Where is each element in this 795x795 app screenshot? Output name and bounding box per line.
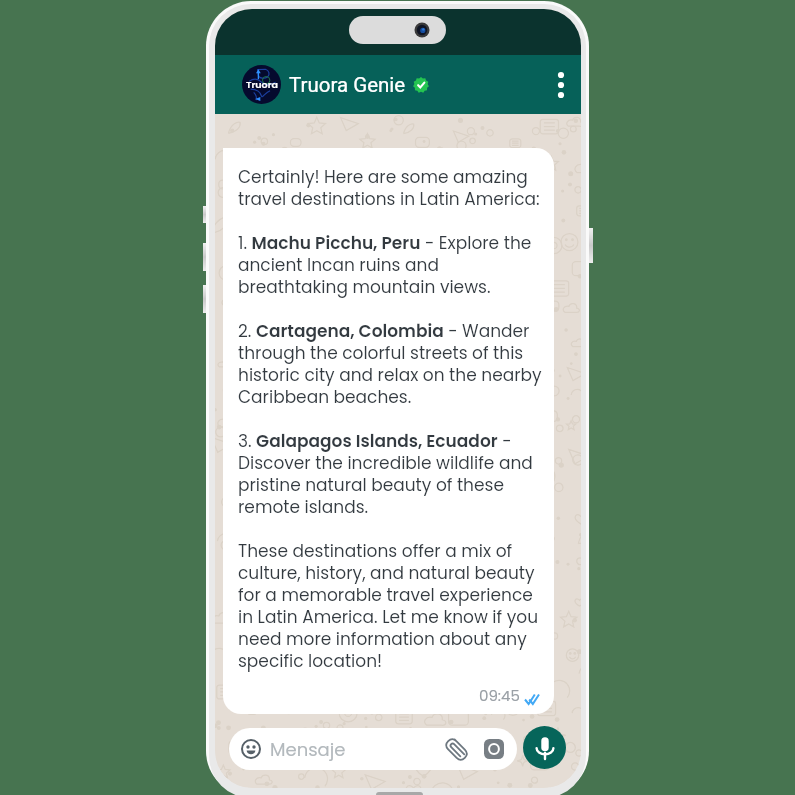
staticText: Mensaje [270,737,346,762]
button[interactable]: Contact photo [242,65,281,104]
button[interactable]: Certainly! Here are some amazing travel … [223,148,554,714]
button[interactable]: Camera [484,739,504,759]
staticText: Truora Genie [289,73,406,97]
button[interactable]: Mensaje [229,728,517,770]
staticText: Certainly! Here are some amazing travel … [238,167,543,673]
button[interactable]: Record voice message [523,726,566,769]
button[interactable]: Attach file [445,738,468,761]
staticText: Truora [246,78,278,91]
button[interactable]: More options [545,69,577,101]
staticText: 09:45 [479,685,520,706]
